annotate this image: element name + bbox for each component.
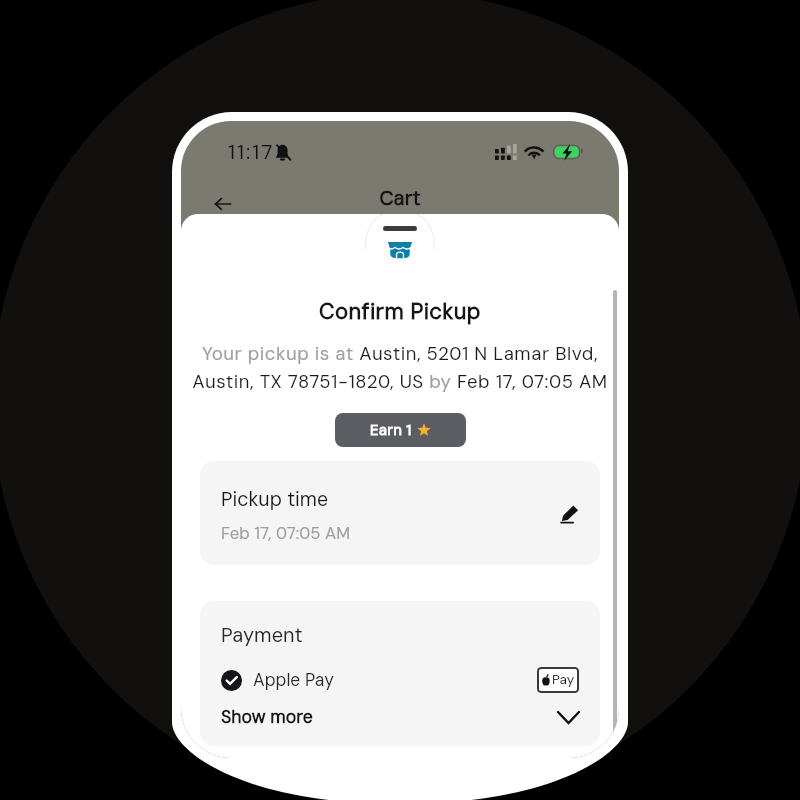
staticText: 11:17 [228,139,275,166]
staticText: Show more [221,706,313,729]
button[interactable]: Edit pickup time [555,499,583,527]
staticText: Cart [181,185,619,211]
button[interactable]: Back [208,189,237,218]
button[interactable]: Apple Pay [221,667,579,693]
button[interactable]: Show more [221,706,579,729]
button[interactable]: Apple Pay [537,667,579,693]
staticText: Confirm Pickup [181,297,619,326]
button[interactable]: Earn 1 [335,413,466,447]
staticText: Feb 17, 07:05 AM [221,522,350,544]
staticText: Pickup time [221,487,329,513]
button[interactable]: Pickup time [200,461,600,565]
staticText: Earn 1 [370,420,412,440]
staticText: Apple Pay [253,669,334,692]
staticText: Pay [552,671,575,689]
staticText: Payment [221,622,303,648]
staticText: Your pickup is at Austin, 5201 N Lamar B… [190,342,610,394]
